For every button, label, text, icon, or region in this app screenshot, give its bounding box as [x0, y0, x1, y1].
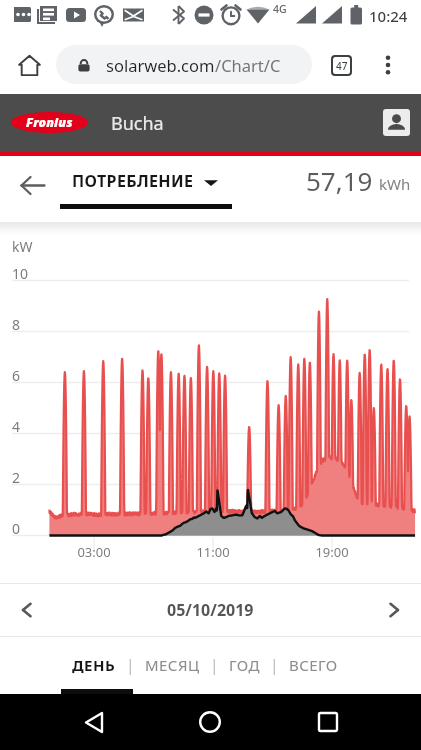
staticText: Bucha: [111, 111, 164, 136]
button[interactable]: Home: [12, 48, 46, 82]
staticText: kWh: [379, 174, 411, 194]
staticText: /Chart/C: [215, 54, 281, 76]
button[interactable]: Back: [14, 167, 50, 203]
staticText: 11:00: [183, 543, 243, 561]
staticText: 47: [336, 59, 348, 73]
staticText: |: [126, 654, 135, 676]
button[interactable]: Fronius: [11, 112, 88, 133]
staticText: ПОТРЕБЛЕНИЕ: [72, 170, 194, 192]
staticText: 6: [12, 366, 21, 385]
staticText: |: [270, 654, 279, 676]
staticText: |: [210, 654, 219, 676]
staticText: solarweb.com: [106, 54, 215, 76]
button[interactable]: Home: [188, 700, 232, 744]
button[interactable]: ГОД: [229, 655, 260, 675]
staticText: 03:00: [64, 543, 124, 561]
button[interactable]: Tabs: [324, 48, 358, 82]
button[interactable]: Next day: [373, 589, 415, 631]
button[interactable]: ВСЕГО: [289, 655, 338, 675]
button[interactable]: ДЕНЬ: [72, 655, 116, 675]
staticText: 8: [12, 315, 21, 334]
button[interactable]: Recent apps: [306, 700, 350, 744]
button[interactable]: solarweb.com: [56, 45, 312, 84]
staticText: Fronius: [26, 114, 73, 131]
button[interactable]: Account: [378, 104, 414, 140]
staticText: 4G: [273, 2, 287, 16]
staticText: 10:24: [369, 6, 408, 26]
staticText: 10: [12, 264, 29, 283]
staticText: 57,19: [306, 163, 373, 198]
staticText: 05/10/2019: [167, 599, 254, 621]
button[interactable]: ПОТРЕБЛЕНИЕ: [72, 170, 218, 192]
staticText: 4: [12, 417, 21, 436]
button[interactable]: More options: [371, 48, 405, 82]
staticText: kW: [12, 237, 33, 256]
staticText: 0: [12, 519, 21, 538]
button[interactable]: Previous day: [6, 589, 48, 631]
button[interactable]: МЕСЯЦ: [145, 655, 200, 675]
button[interactable]: Back: [72, 700, 116, 744]
staticText: 2: [12, 468, 21, 487]
staticText: 19:00: [302, 543, 362, 561]
